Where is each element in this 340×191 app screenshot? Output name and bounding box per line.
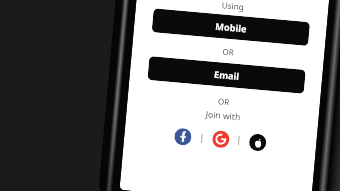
button[interactable]: Mobile [152,8,310,46]
staticText: OR [217,95,230,107]
button[interactable]: Email [147,56,306,94]
staticText: Using [221,0,245,12]
button[interactable]: Sign up with Apple [248,133,267,152]
staticText: Join with [205,108,241,123]
button[interactable]: Sign up with Google [212,130,230,148]
button[interactable]: Sign up with Facebook [174,128,192,146]
staticText: Mobile [215,20,248,36]
staticText: Email [213,68,241,83]
staticText: OR [222,45,235,57]
